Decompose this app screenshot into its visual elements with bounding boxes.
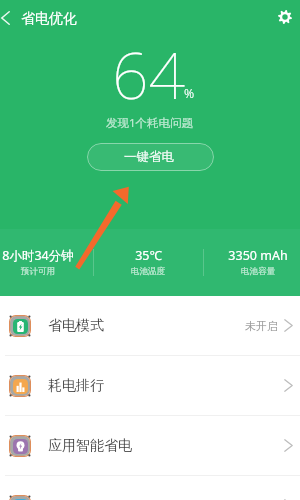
staticText: 一键省电 (124, 149, 174, 165)
staticText: 应用智能省电 (48, 437, 132, 455)
staticText: 8小时34分钟 (2, 247, 74, 264)
staticText: 未开启 (245, 319, 278, 333)
button[interactable]: 耗电排行 (0, 356, 300, 415)
button[interactable]: 省电模式 (0, 296, 300, 355)
staticText: 电池温度 (131, 266, 165, 277)
button[interactable] (0, 476, 300, 500)
staticText: 省电模式 (48, 317, 104, 335)
staticText: 3350 mAh (228, 247, 288, 264)
staticText: 发现1个耗电问题 (106, 115, 194, 131)
button[interactable]: Settings (266, 0, 300, 34)
staticText: % (184, 85, 195, 102)
button[interactable]: Back (0, 0, 18, 36)
button[interactable]: 应用智能省电 (0, 416, 300, 475)
staticText: 电池容量 (241, 266, 275, 277)
staticText: 耗电排行 (48, 377, 104, 395)
staticText: 预计可用 (21, 266, 55, 277)
staticText: 35℃ (135, 247, 162, 264)
staticText: 省电优化 (21, 10, 77, 28)
button[interactable]: 一键省电 (87, 143, 214, 171)
staticText: 64 (112, 31, 185, 118)
